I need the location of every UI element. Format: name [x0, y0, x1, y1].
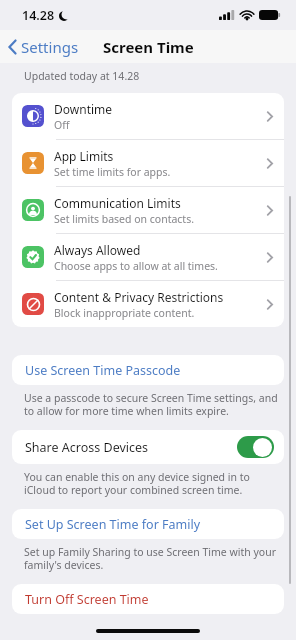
- staticText: Set time limits for apps.: [54, 165, 171, 179]
- button[interactable]: Settings: [0, 32, 87, 62]
- button[interactable]: Use Screen Time Passcode: [12, 355, 284, 385]
- staticText: Turn Off Screen Time: [25, 591, 149, 608]
- staticText: Block inappropriate content.: [54, 306, 195, 320]
- button[interactable]: Turn Off Screen Time: [12, 584, 284, 614]
- staticText: 14.28: [22, 7, 55, 24]
- button[interactable]: Content & Privacy Restrictions: [12, 281, 284, 327]
- button[interactable]: Share Across Devices toggle, on: [237, 436, 274, 458]
- staticText: Set Up Screen Time for Family: [25, 516, 201, 533]
- staticText: Use a passcode to secure Screen Time set…: [24, 391, 278, 418]
- button[interactable]: Communication Limits: [12, 187, 284, 233]
- staticText: App Limits: [54, 148, 114, 164]
- staticText: You can enable this on any device signed…: [24, 470, 278, 497]
- button[interactable]: App Limits: [12, 140, 284, 186]
- staticText: Screen Time: [103, 37, 194, 57]
- staticText: Off: [54, 118, 70, 132]
- staticText: Updated today at 14.28: [24, 69, 140, 83]
- staticText: Content & Privacy Restrictions: [54, 289, 224, 305]
- staticText: Set limits based on contacts.: [54, 212, 194, 226]
- staticText: Share Across Devices: [25, 439, 237, 456]
- button[interactable]: Always Allowed: [12, 234, 284, 280]
- button[interactable]: Downtime: [12, 93, 284, 139]
- button[interactable]: Set Up Screen Time for Family: [12, 509, 284, 539]
- staticText: Always Allowed: [54, 242, 141, 258]
- staticText: Choose apps to allow at all times.: [54, 259, 218, 273]
- staticText: Communication Limits: [54, 195, 181, 211]
- staticText: Downtime: [54, 101, 113, 117]
- staticText: Settings: [21, 37, 79, 57]
- staticText: Set up Family Sharing to use Screen Time…: [24, 545, 278, 572]
- staticText: Use Screen Time Passcode: [25, 362, 181, 379]
- button[interactable]: Share Across Devices: [12, 430, 284, 464]
